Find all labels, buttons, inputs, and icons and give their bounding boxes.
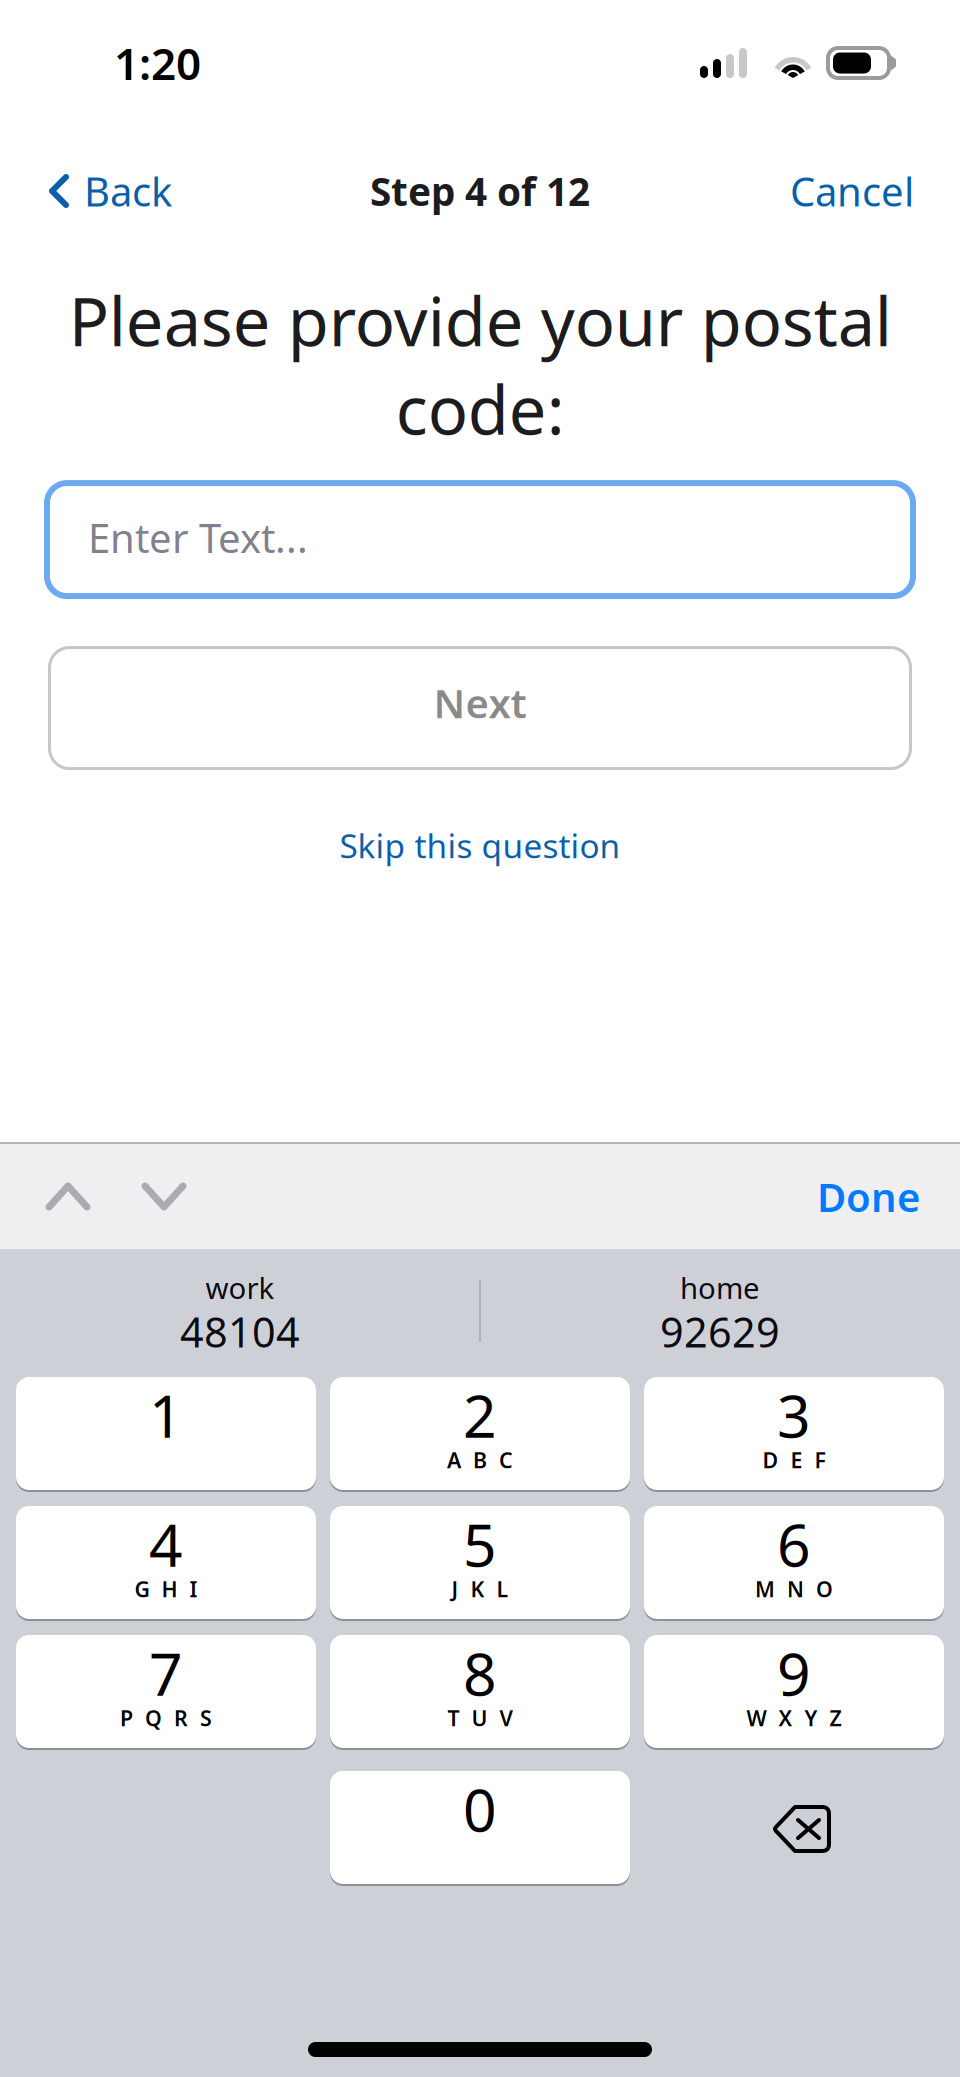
staticText: W X Y Z bbox=[746, 1704, 841, 1732]
staticText: 8 bbox=[463, 1634, 497, 1712]
button[interactable]: 0 bbox=[330, 1771, 630, 1884]
button[interactable]: Done bbox=[797, 1144, 940, 1248]
staticText: 1 bbox=[149, 1376, 183, 1454]
staticText: M N O bbox=[755, 1575, 833, 1603]
button[interactable]: home bbox=[480, 1249, 960, 1373]
staticText: work bbox=[205, 1268, 274, 1307]
button[interactable]: 6 bbox=[644, 1506, 944, 1619]
staticText: Next bbox=[433, 676, 526, 729]
button[interactable]: work bbox=[0, 1249, 480, 1373]
button[interactable]: 9 bbox=[644, 1635, 944, 1748]
button[interactable]: Delete bbox=[644, 1771, 944, 1884]
staticText: 1:20 bbox=[114, 34, 201, 92]
staticText: Done bbox=[817, 1170, 920, 1223]
staticText: 3 bbox=[777, 1376, 811, 1454]
staticText: Back bbox=[84, 164, 172, 217]
staticText: T U V bbox=[447, 1704, 512, 1732]
staticText: P Q R S bbox=[120, 1704, 212, 1732]
button[interactable]: Previous field bbox=[20, 1144, 116, 1248]
staticText: Step 4 of 12 bbox=[370, 165, 590, 217]
button[interactable]: Next bbox=[48, 646, 912, 770]
staticText: 2 bbox=[463, 1376, 497, 1454]
staticText: home bbox=[680, 1268, 760, 1307]
button[interactable]: 1 bbox=[16, 1377, 316, 1490]
staticText: D E F bbox=[762, 1446, 825, 1474]
button[interactable]: Skip this question bbox=[315, 807, 644, 883]
button[interactable]: 5 bbox=[330, 1506, 630, 1619]
staticText: Enter Text... bbox=[88, 511, 308, 564]
staticText: Cancel bbox=[790, 164, 914, 217]
staticText: 4 bbox=[149, 1505, 183, 1583]
staticText: A B C bbox=[447, 1446, 513, 1474]
button[interactable]: 7 bbox=[16, 1635, 316, 1748]
staticText: 7 bbox=[149, 1634, 183, 1712]
button[interactable]: Back bbox=[0, 143, 196, 239]
button[interactable]: 3 bbox=[644, 1377, 944, 1490]
button[interactable]: Next field bbox=[116, 1144, 212, 1248]
staticText: J K L bbox=[451, 1575, 508, 1603]
staticText: G H I bbox=[134, 1575, 197, 1603]
button[interactable]: Cancel bbox=[766, 143, 960, 239]
staticText: 9 bbox=[777, 1634, 811, 1712]
staticText: 0 bbox=[463, 1770, 497, 1848]
staticText: 92629 bbox=[660, 1304, 780, 1359]
staticText: 48104 bbox=[180, 1304, 300, 1359]
staticText: Please provide your postal code: bbox=[68, 276, 891, 453]
staticText: Skip this question bbox=[339, 823, 620, 867]
staticText: 5 bbox=[463, 1505, 497, 1583]
button[interactable]: 8 bbox=[330, 1635, 630, 1748]
button[interactable]: 2 bbox=[330, 1377, 630, 1490]
button[interactable]: 4 bbox=[16, 1506, 316, 1619]
staticText: 6 bbox=[777, 1505, 811, 1583]
